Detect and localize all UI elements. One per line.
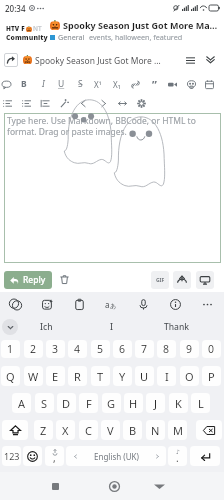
- button[interactable]: 4: [68, 340, 87, 358]
- button[interactable]: shift: [2, 420, 28, 440]
- button[interactable]: 6: [113, 340, 132, 358]
- staticText: A: [18, 396, 26, 411]
- button[interactable]: magic: [57, 96, 71, 110]
- button[interactable]: Share: [4, 53, 18, 67]
- staticText: 2: [30, 342, 37, 356]
- staticText: U: [140, 369, 149, 384]
- button[interactable]: more: [198, 295, 216, 313]
- button[interactable]: upload: [173, 271, 191, 289]
- button[interactable]: P: [202, 366, 221, 386]
- button[interactable]: gear: [134, 96, 148, 110]
- button[interactable]: Delete draft: [56, 271, 73, 288]
- button[interactable]: GIF: [151, 271, 169, 289]
- staticText: I: [110, 321, 114, 333]
- button[interactable]: sup: [91, 77, 105, 91]
- button[interactable]: cal: [202, 77, 216, 91]
- button[interactable]: 8: [157, 340, 176, 358]
- button[interactable]: Recents: [44, 475, 66, 497]
- staticText: T: [97, 369, 104, 384]
- button[interactable]: R: [68, 366, 87, 386]
- button[interactable]: T: [91, 366, 110, 386]
- button[interactable]: Home: [103, 475, 125, 497]
- button[interactable]: lt: [76, 96, 90, 110]
- button[interactable]: Y: [113, 366, 132, 386]
- button[interactable]: B: [17, 77, 31, 91]
- button[interactable]: screen: [196, 271, 214, 289]
- button[interactable]: Ich: [20, 316, 72, 338]
- button[interactable]: W: [24, 366, 43, 386]
- button[interactable]: Thank: [151, 316, 203, 338]
- button[interactable]: Z: [34, 420, 53, 440]
- button[interactable]: I: [86, 316, 138, 338]
- button[interactable]: Menu: [183, 53, 197, 67]
- button[interactable]: U: [54, 77, 68, 91]
- button[interactable]: 5: [91, 340, 110, 358]
- button[interactable]: X: [56, 420, 75, 440]
- button[interactable]: S: [73, 77, 87, 91]
- staticText: ♪: [176, 448, 180, 455]
- button[interactable]: O: [180, 366, 199, 386]
- button[interactable]: ul: [0, 96, 14, 110]
- button[interactable]: F: [79, 393, 98, 413]
- button[interactable]: Q: [1, 366, 20, 386]
- button[interactable]: Reply: [4, 271, 52, 289]
- button[interactable]: E: [46, 366, 65, 386]
- button[interactable]: expand: [115, 96, 129, 110]
- button[interactable]: link: [128, 77, 142, 91]
- button[interactable]: Back: [148, 475, 170, 497]
- staticText: ”: [152, 77, 157, 91]
- button[interactable]: D: [57, 393, 76, 413]
- button[interactable]: mic: [134, 295, 152, 313]
- button[interactable]: B: [123, 420, 142, 440]
- button[interactable]: More suggestions: [2, 319, 18, 335]
- button[interactable]: V: [101, 420, 120, 440]
- button[interactable]: 2: [24, 340, 43, 358]
- button[interactable]: 1: [1, 340, 20, 358]
- button[interactable]: info: [166, 295, 184, 313]
- button[interactable]: Jump to bottom: [203, 53, 217, 67]
- button[interactable]: A: [12, 393, 31, 413]
- button[interactable]: gboard: [6, 295, 24, 313]
- button[interactable]: emoji: [23, 446, 42, 466]
- button[interactable]: enter: [190, 446, 220, 466]
- button[interactable]: M: [168, 420, 187, 440]
- staticText: 6: [119, 342, 126, 356]
- staticText: F: [86, 396, 92, 411]
- staticText: Spooky Season Just Got More Ma…: [63, 19, 218, 31]
- button[interactable]: bubble: [0, 77, 13, 91]
- button[interactable]: quote: [147, 77, 161, 91]
- button[interactable]: skull: [184, 77, 198, 91]
- button[interactable]: translate: [102, 295, 120, 313]
- button[interactable]: quoteblk: [38, 96, 52, 110]
- button[interactable]: clipboard: [70, 295, 88, 313]
- button[interactable]: H: [124, 393, 143, 413]
- button[interactable]: J: [146, 393, 165, 413]
- staticText: S: [78, 78, 83, 90]
- button[interactable]: I: [157, 366, 176, 386]
- button[interactable]: video: [165, 77, 179, 91]
- button[interactable]: I: [36, 77, 50, 91]
- button[interactable]: 7: [135, 340, 154, 358]
- staticText: W: [28, 369, 39, 384]
- button[interactable]: bksp: [196, 420, 222, 440]
- button[interactable]: comma: [45, 446, 64, 466]
- button[interactable]: period: [168, 446, 187, 466]
- button[interactable]: C: [79, 420, 98, 440]
- staticText: O: [185, 369, 194, 384]
- button[interactable]: sub: [110, 77, 124, 91]
- button[interactable]: 123: [2, 446, 21, 466]
- button[interactable]: K: [169, 393, 188, 413]
- button[interactable]: 0: [202, 340, 221, 358]
- button[interactable]: 3: [46, 340, 65, 358]
- button[interactable]: ol: [19, 96, 33, 110]
- staticText: 1: [7, 342, 14, 356]
- button[interactable]: English (UK): [66, 446, 166, 466]
- button[interactable]: S: [35, 393, 54, 413]
- button[interactable]: 9: [180, 340, 199, 358]
- button[interactable]: U: [135, 366, 154, 386]
- button[interactable]: L: [191, 393, 210, 413]
- button[interactable]: gt: [96, 96, 110, 110]
- button[interactable]: N: [146, 420, 165, 440]
- button[interactable]: sticker: [38, 295, 56, 313]
- button[interactable]: G: [102, 393, 121, 413]
